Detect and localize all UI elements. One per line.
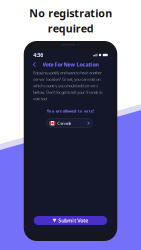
staticText: 4:36 [33,51,43,59]
staticText: Enjoying spotify and want to have anothe… [33,70,102,101]
button[interactable]: Canada [46,119,92,128]
staticText: Submit Vote [58,217,88,224]
staticText: No registration required [29,6,112,35]
button[interactable]: Submit Vote [34,216,107,225]
button[interactable]: Back [31,60,38,69]
staticText: Vote For New Location [42,61,98,68]
staticText: Canada [57,120,71,126]
staticText: You are allowed to vote! [47,108,94,114]
